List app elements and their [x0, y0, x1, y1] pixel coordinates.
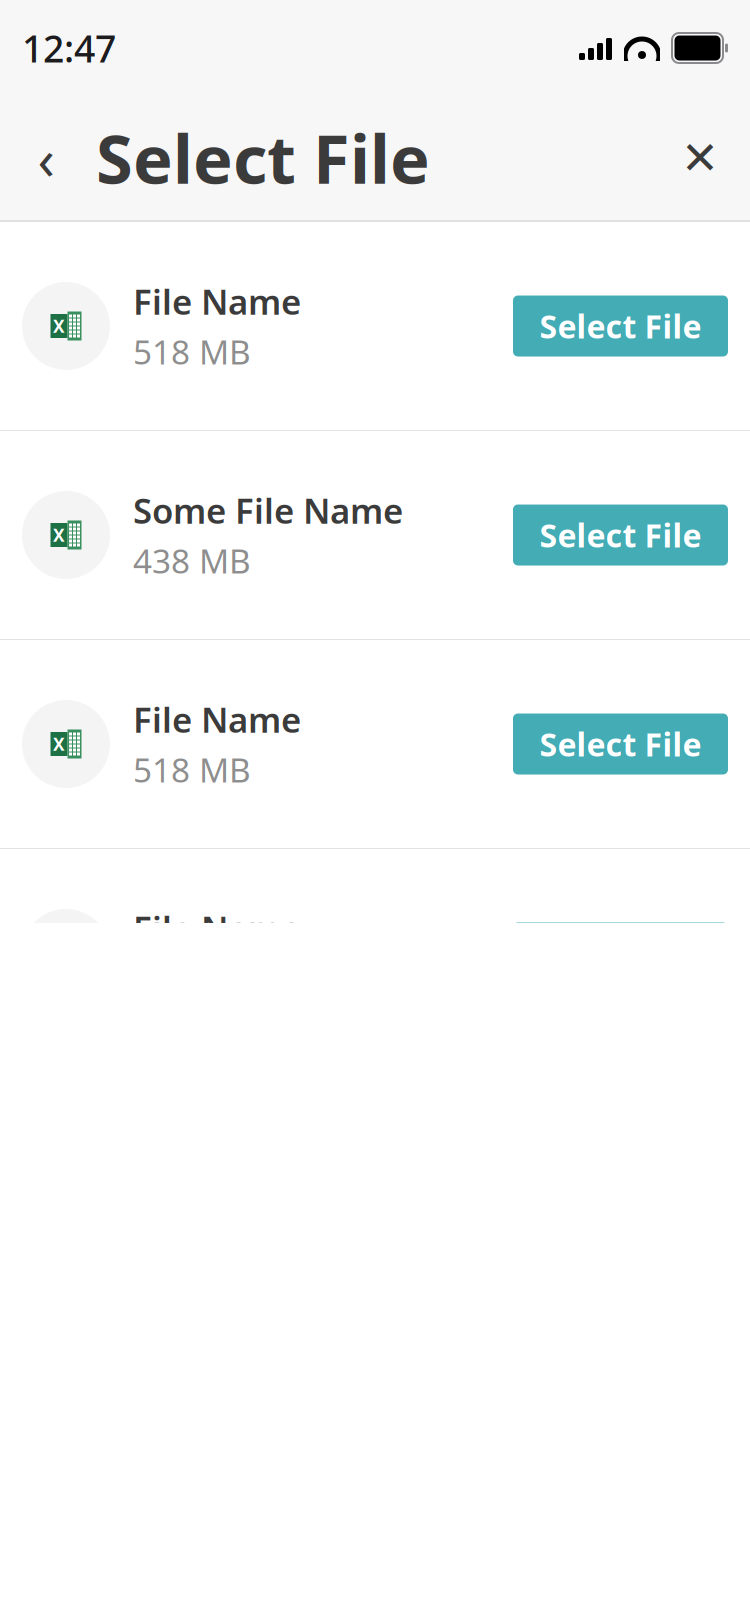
staticText: 518 MB	[133, 329, 251, 374]
staticText: Select File	[539, 305, 701, 347]
staticText: X	[53, 732, 65, 755]
button[interactable]: Back	[18, 123, 74, 193]
button[interactable]: Select File	[513, 713, 728, 774]
button[interactable]: Select File	[513, 922, 728, 983]
staticText: File Name	[133, 696, 301, 742]
staticText: ‹	[37, 121, 54, 195]
staticText: 12:47	[22, 23, 116, 73]
staticText: File Name	[133, 278, 301, 324]
button[interactable]: Close	[668, 123, 732, 193]
staticText: Some File Name	[133, 487, 403, 533]
button[interactable]: Select File	[513, 504, 728, 565]
staticText: 518 MB	[133, 747, 251, 792]
staticText: ✕	[681, 132, 719, 184]
staticText: 438 MB	[133, 538, 251, 583]
staticText: Select File	[539, 723, 701, 765]
staticText: Select File	[539, 514, 701, 556]
button[interactable]: Select File	[513, 295, 728, 356]
staticText: Select File	[96, 114, 430, 202]
staticText: X	[53, 523, 65, 546]
staticText: X	[53, 314, 65, 337]
staticText: File Name	[133, 905, 301, 951]
